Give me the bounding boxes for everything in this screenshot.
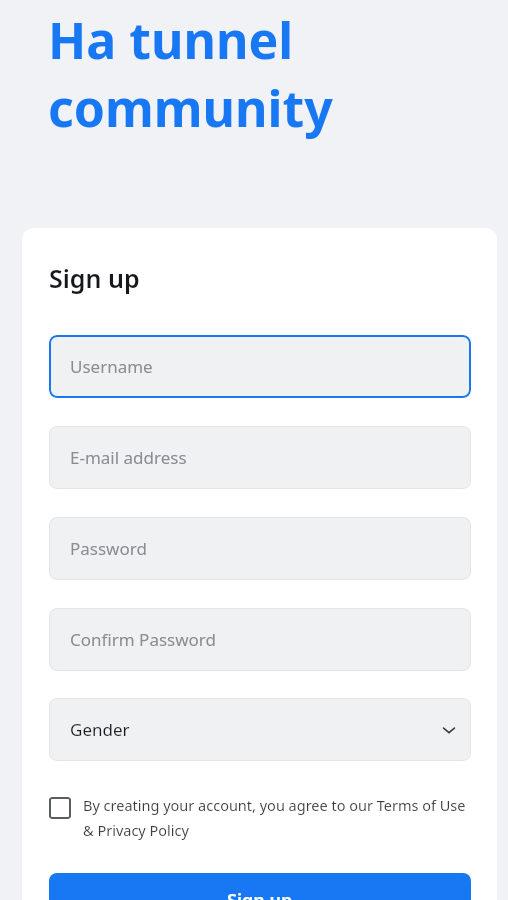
staticText: Username [70, 355, 153, 378]
other: Accept terms checkbox [49, 797, 71, 819]
staticText: Sign up [49, 261, 140, 295]
staticText: Sign up [227, 888, 293, 900]
button[interactable]: E-mail address [49, 426, 471, 489]
staticText: community [48, 74, 333, 142]
other: Expand gender options [441, 722, 457, 738]
staticText: E-mail address [70, 446, 187, 469]
button[interactable]: Confirm Password [49, 608, 471, 671]
button[interactable]: Sign up [49, 873, 471, 900]
button[interactable]: Gender [49, 698, 471, 761]
staticText: Gender [70, 718, 130, 741]
button[interactable]: Username [49, 335, 471, 398]
button[interactable]: Accept terms checkbox [49, 795, 473, 841]
staticText: Password [70, 537, 147, 560]
staticText: Ha tunnel [48, 6, 294, 74]
staticText: By creating your account, you agree to o… [83, 795, 473, 841]
staticText: Confirm Password [70, 628, 216, 651]
button[interactable]: Password [49, 517, 471, 580]
